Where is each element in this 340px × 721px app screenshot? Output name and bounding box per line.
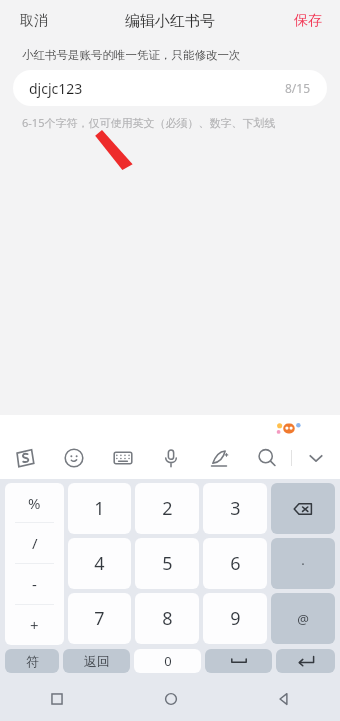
staticText: 返回	[84, 653, 110, 669]
button[interactable]: 9	[203, 593, 267, 644]
button[interactable]: Delete	[271, 483, 335, 534]
button[interactable]: 5	[135, 538, 199, 589]
staticText: 小红书号是账号的唯一凭证，只能修改一次	[22, 48, 324, 62]
staticText: 符	[26, 653, 39, 669]
button[interactable]: 取消	[8, 6, 60, 36]
staticText: 9	[230, 606, 241, 631]
button[interactable]: Handwriting	[195, 437, 243, 479]
button[interactable]: 3	[203, 483, 267, 534]
button[interactable]: Search	[243, 437, 291, 479]
button[interactable]: 7	[68, 593, 131, 644]
staticText: 8	[162, 606, 173, 631]
staticText: 6-15个字符，仅可使用英文（必须）、数字、下划线	[22, 115, 330, 130]
button[interactable]: ·	[271, 538, 335, 589]
button[interactable]: 6	[203, 538, 267, 589]
staticText: 0	[164, 652, 172, 670]
button[interactable]: 2	[135, 483, 199, 534]
button[interactable]: Voice input	[147, 437, 195, 479]
button[interactable]: 返回	[63, 649, 130, 673]
button[interactable]: djcjc123	[13, 70, 327, 106]
staticText: 保存	[294, 12, 322, 30]
button[interactable]: 保存	[284, 6, 332, 36]
button[interactable]: 1	[68, 483, 131, 534]
button[interactable]: Enter	[276, 649, 335, 673]
staticText: /	[32, 533, 38, 553]
staticText: -	[32, 574, 37, 594]
staticText: 2	[162, 496, 173, 521]
staticText: @	[297, 610, 309, 628]
staticText: 4	[94, 551, 105, 576]
button[interactable]: %	[5, 483, 64, 645]
staticText: 5	[162, 551, 173, 576]
staticText: 编辑小红书号	[125, 12, 215, 31]
button[interactable]: Home	[114, 677, 227, 721]
staticText: %	[28, 493, 41, 513]
staticText: +	[30, 615, 39, 635]
staticText: ·	[301, 555, 305, 573]
button[interactable]: 4	[68, 538, 131, 589]
button[interactable]: Space	[205, 649, 272, 673]
button[interactable]: Back	[227, 677, 340, 721]
button[interactable]: Emoji	[49, 437, 98, 479]
staticText: 8/15	[285, 80, 311, 96]
staticText: 取消	[20, 12, 48, 30]
button[interactable]: @	[271, 593, 335, 644]
button[interactable]: Sogou keyboard	[0, 437, 49, 479]
staticText: 3	[230, 496, 241, 521]
staticText: 7	[94, 606, 105, 631]
button[interactable]: Keyboard layout	[98, 437, 147, 479]
button[interactable]: Hide keyboard	[292, 437, 340, 479]
staticText: 6	[230, 551, 241, 576]
button[interactable]: 0	[134, 649, 201, 673]
staticText: djcjc123	[29, 79, 285, 98]
button[interactable]: 8	[135, 593, 199, 644]
button[interactable]: 符	[5, 649, 59, 673]
staticText: 1	[94, 496, 105, 521]
button[interactable]: Recents	[0, 677, 114, 721]
